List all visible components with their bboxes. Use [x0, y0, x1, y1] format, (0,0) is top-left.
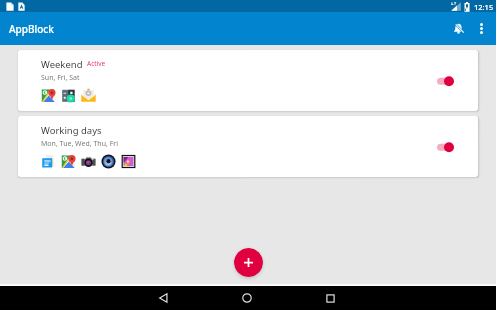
button[interactable]: More options	[468, 12, 494, 45]
button[interactable]: Working days	[18, 116, 478, 177]
button[interactable]: Toggle Working days	[428, 135, 462, 159]
button[interactable]: Toggle Weekend	[428, 69, 462, 93]
staticText: Active	[87, 59, 106, 68]
staticText: Sun, Fri, Sat	[41, 73, 80, 83]
button[interactable]: Recent apps	[304, 286, 357, 310]
button[interactable]: Mute notifications	[442, 12, 475, 45]
staticText: AppBlock	[9, 22, 54, 36]
staticText: Mon, Tue, Wed, Thu, Fri	[41, 139, 119, 149]
button[interactable]: Add schedule	[234, 248, 263, 277]
button[interactable]: Weekend	[18, 50, 478, 111]
button[interactable]: Home	[220, 286, 273, 310]
button[interactable]: Back	[137, 286, 190, 310]
staticText: 12:15	[474, 2, 494, 12]
staticText: Weekend	[41, 58, 83, 71]
staticText: Working days	[41, 124, 102, 137]
